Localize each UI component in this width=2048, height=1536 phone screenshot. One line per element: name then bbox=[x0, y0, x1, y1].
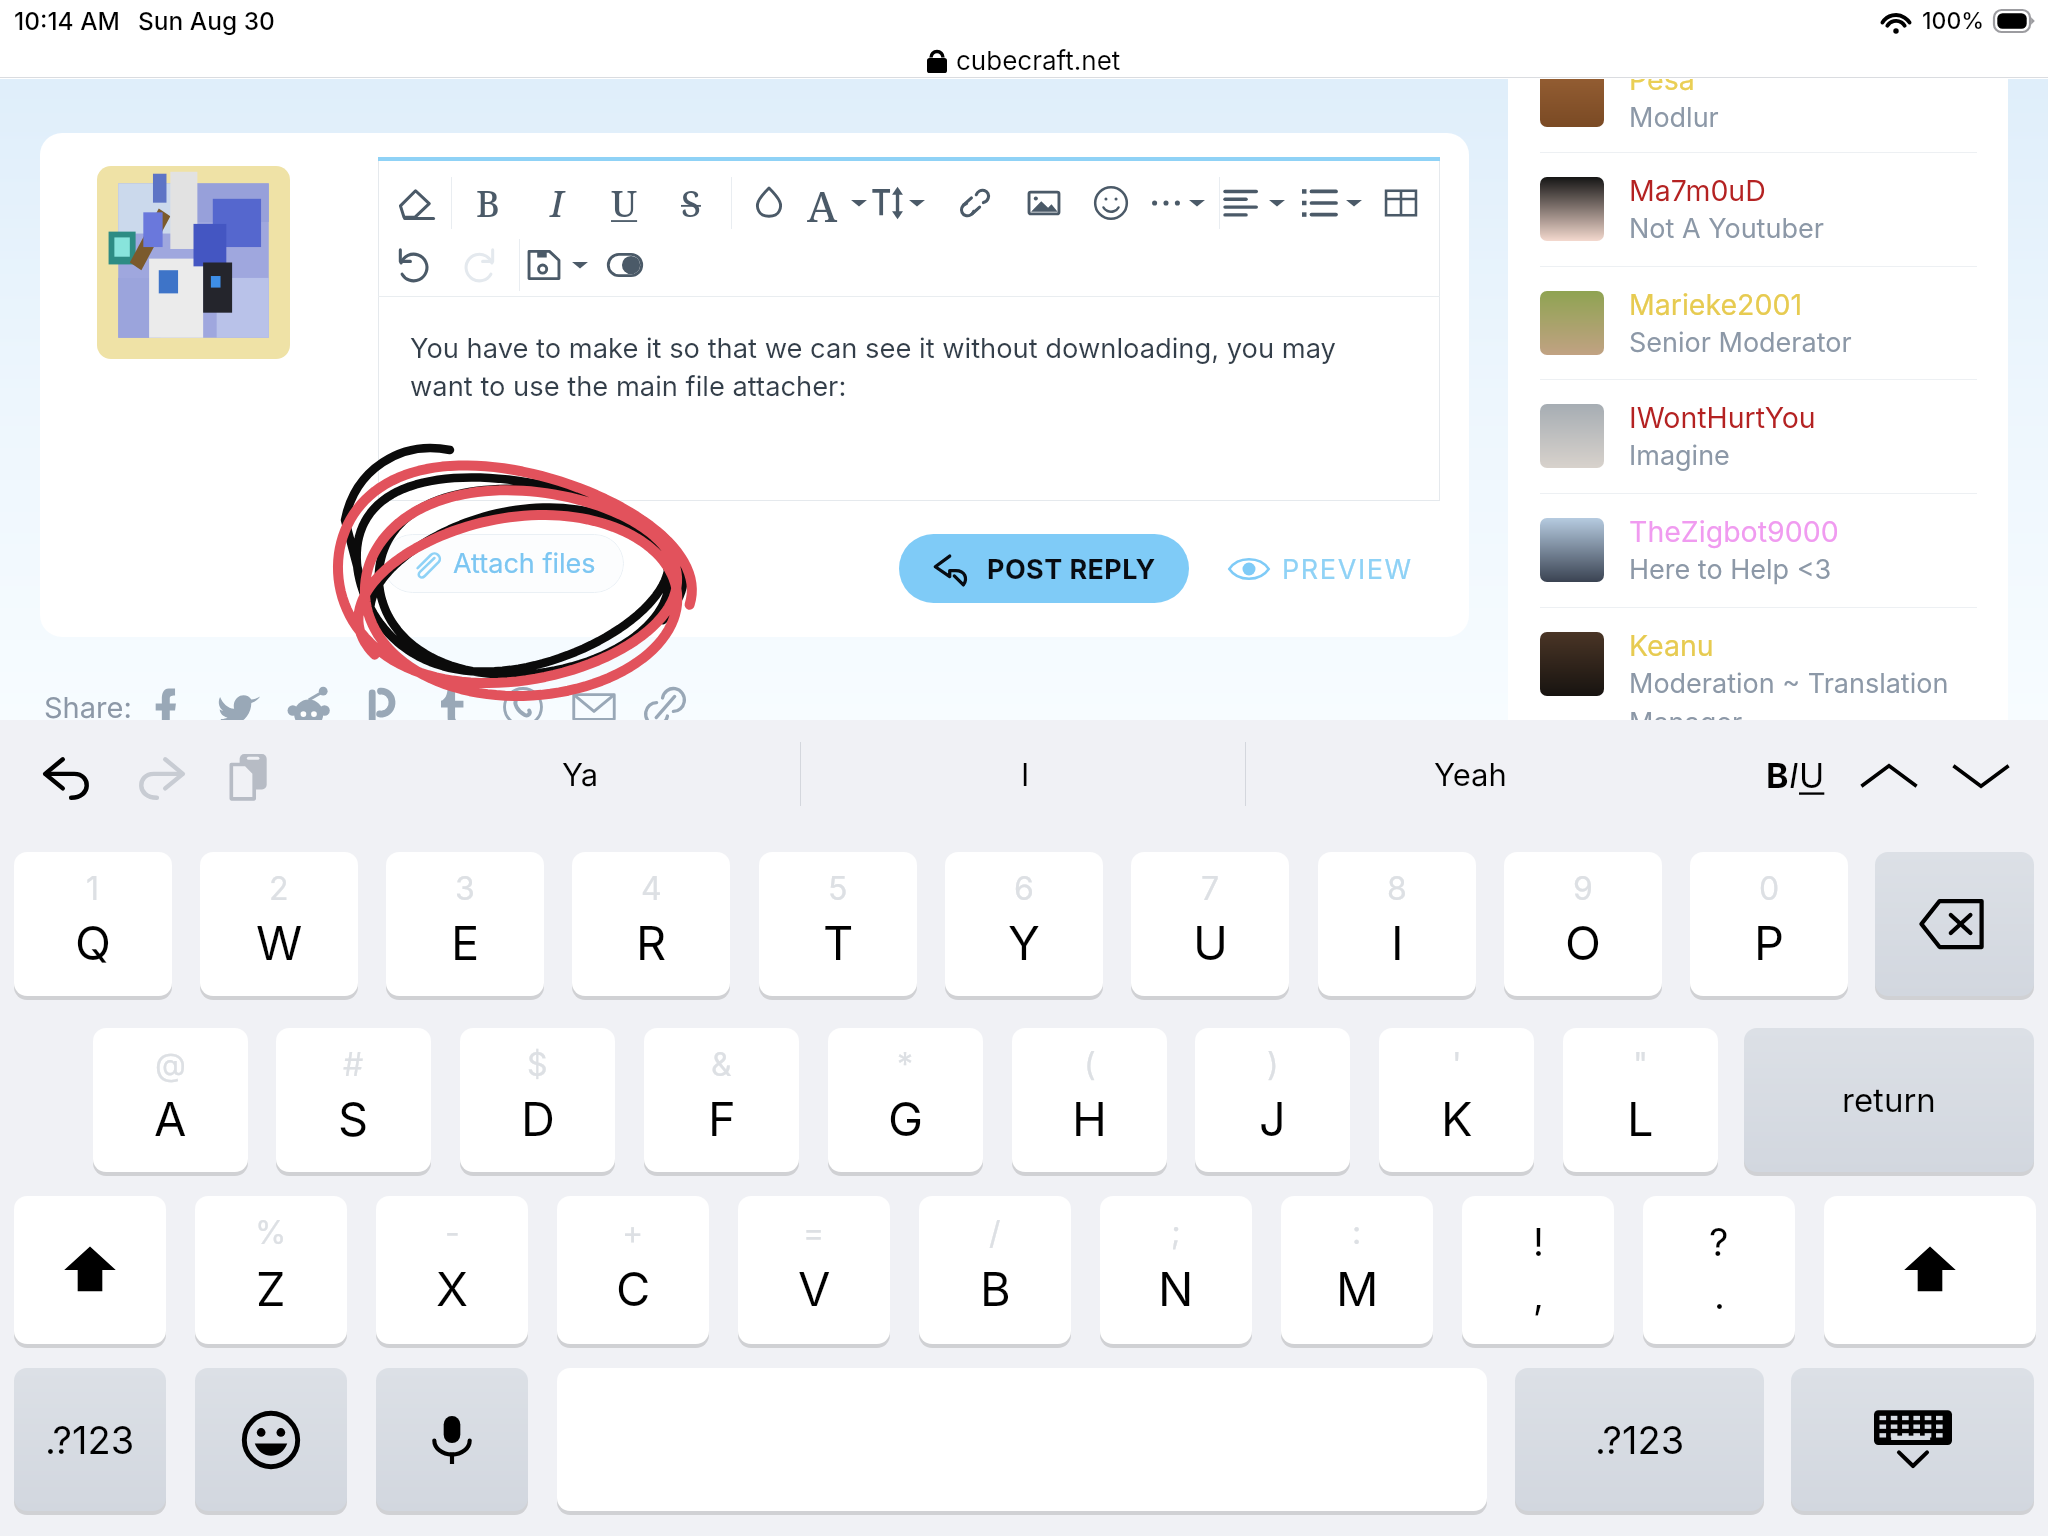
button[interactable]: Text colour bbox=[739, 177, 799, 229]
button[interactable]: Twitter bbox=[203, 679, 274, 735]
button[interactable]: Yeah bbox=[1310, 720, 1630, 830]
button[interactable]: More options bbox=[1136, 177, 1196, 229]
button[interactable]: TheZigbot9000 bbox=[1508, 494, 2008, 607]
button[interactable]: & bbox=[644, 1028, 799, 1172]
button[interactable]: = bbox=[738, 1196, 890, 1344]
button[interactable]: Hide keyboard bbox=[1791, 1368, 2034, 1511]
button[interactable]: 6 bbox=[945, 852, 1103, 996]
button[interactable]: ' bbox=[1379, 1028, 1534, 1172]
button[interactable]: ! bbox=[1462, 1196, 1614, 1344]
button[interactable]: Dictation bbox=[376, 1368, 528, 1511]
button[interactable]: 1 bbox=[14, 852, 172, 996]
button[interactable]: Move up bbox=[1852, 746, 1926, 806]
button[interactable]: % bbox=[195, 1196, 347, 1344]
button[interactable]: Bold bbox=[458, 177, 518, 229]
button[interactable]: Insert image bbox=[1014, 177, 1074, 229]
staticText: , bbox=[1533, 1272, 1544, 1318]
button[interactable]: ? bbox=[1643, 1196, 1795, 1344]
staticText: V bbox=[798, 1260, 831, 1317]
button[interactable]: Reddit bbox=[274, 679, 345, 735]
button[interactable]: POST REPLY bbox=[899, 534, 1189, 603]
button[interactable]: Alignment menu bbox=[1247, 177, 1307, 229]
button[interactable]: ) bbox=[1195, 1028, 1350, 1172]
button[interactable]: Font size bbox=[858, 177, 918, 229]
button[interactable]: : bbox=[1281, 1196, 1433, 1344]
button[interactable]: Redo bbox=[130, 748, 190, 808]
button[interactable]: Email bbox=[558, 679, 629, 735]
button[interactable]: Font menu bbox=[829, 177, 889, 229]
staticText: " bbox=[1633, 1045, 1648, 1084]
button[interactable]: PREVIEW bbox=[1228, 548, 1413, 590]
staticText: Sun Aug 30 bbox=[138, 6, 275, 36]
button[interactable]: Text alignment bbox=[1212, 177, 1272, 229]
button[interactable]: # bbox=[276, 1028, 431, 1172]
button[interactable]: return bbox=[1744, 1028, 2034, 1172]
button[interactable]: Redo bbox=[449, 239, 509, 291]
button[interactable]: + bbox=[557, 1196, 709, 1344]
staticText: I bbox=[1789, 755, 1799, 796]
button[interactable]: .?123 bbox=[1515, 1368, 1764, 1511]
button[interactable]: Attach files bbox=[383, 534, 624, 593]
staticText: .?123 bbox=[45, 1417, 135, 1463]
button[interactable]: Lists bbox=[1289, 177, 1349, 229]
button[interactable]: 9 bbox=[1504, 852, 1662, 996]
button[interactable]: Font bbox=[792, 177, 852, 229]
button[interactable]: Strikethrough bbox=[661, 177, 721, 229]
button[interactable]: Shift bbox=[14, 1196, 166, 1344]
button[interactable]: Ya bbox=[420, 720, 740, 830]
button[interactable]: 8 bbox=[1318, 852, 1476, 996]
button[interactable]: Italic bbox=[527, 177, 587, 229]
button[interactable]: * bbox=[828, 1028, 983, 1172]
button[interactable]: 3 bbox=[386, 852, 544, 996]
button[interactable]: Backspace bbox=[1875, 852, 2034, 996]
staticText: Pesa bbox=[1629, 62, 1695, 96]
button[interactable]: 2 bbox=[200, 852, 358, 996]
button[interactable]: 7 bbox=[1131, 852, 1289, 996]
staticText: Not A Youtuber bbox=[1629, 212, 1824, 245]
button[interactable]: " bbox=[1563, 1028, 1718, 1172]
button[interactable]: 5 bbox=[759, 852, 917, 996]
button[interactable]: Ma7m0uD bbox=[1508, 153, 2008, 266]
staticText: Q bbox=[75, 914, 111, 971]
button[interactable]: Undo bbox=[384, 239, 444, 291]
button[interactable]: Facebook bbox=[132, 679, 203, 735]
button[interactable]: Font size menu bbox=[887, 177, 947, 229]
button[interactable]: IWontHurtYou bbox=[1508, 380, 2008, 493]
button[interactable]: List menu bbox=[1324, 177, 1384, 229]
staticText: return bbox=[1842, 1080, 1936, 1120]
button[interactable]: Insert link bbox=[945, 177, 1005, 229]
button[interactable]: ( bbox=[1012, 1028, 1167, 1172]
button[interactable]: $ bbox=[460, 1028, 615, 1172]
button[interactable]: Pinterest bbox=[345, 679, 416, 735]
button[interactable]: WhatsApp bbox=[487, 679, 558, 735]
button[interactable]: Underline bbox=[594, 177, 654, 229]
button[interactable]: - bbox=[376, 1196, 528, 1344]
button[interactable]: More menu bbox=[1167, 177, 1227, 229]
button[interactable]: Copy link bbox=[629, 679, 700, 735]
button[interactable]: 0 bbox=[1690, 852, 1848, 996]
button[interactable]: Tumblr bbox=[416, 679, 487, 735]
button[interactable]: Insert table bbox=[1371, 177, 1431, 229]
button[interactable]: Emoji bbox=[195, 1368, 347, 1511]
button[interactable]: .?123 bbox=[14, 1368, 166, 1511]
button[interactable]: Move down bbox=[1944, 746, 2018, 806]
button[interactable]: / bbox=[919, 1196, 1071, 1344]
button[interactable]: B bbox=[1766, 750, 1825, 800]
button[interactable]: I bbox=[865, 720, 1185, 830]
button[interactable]: Marieke2001 bbox=[1508, 267, 2008, 380]
button[interactable]: ; bbox=[1100, 1196, 1252, 1344]
staticText: Marieke2001 bbox=[1629, 287, 1802, 321]
button[interactable]: Shift bbox=[1824, 1196, 2036, 1344]
button[interactable]: Remove formatting bbox=[387, 177, 447, 229]
button[interactable]: Undo bbox=[38, 748, 98, 808]
button[interactable]: Save draft bbox=[514, 239, 574, 291]
button[interactable]: Emoji bbox=[1081, 177, 1141, 229]
button[interactable]: Toggle BB code bbox=[595, 239, 655, 291]
button[interactable]: Paste bbox=[218, 746, 280, 808]
button[interactable]: @ bbox=[93, 1028, 248, 1172]
button[interactable]: Draft menu bbox=[550, 239, 610, 291]
button[interactable]: 4 bbox=[572, 852, 730, 996]
button[interactable]: Keanu bbox=[1508, 608, 2008, 721]
staticText: 5 bbox=[828, 869, 848, 908]
